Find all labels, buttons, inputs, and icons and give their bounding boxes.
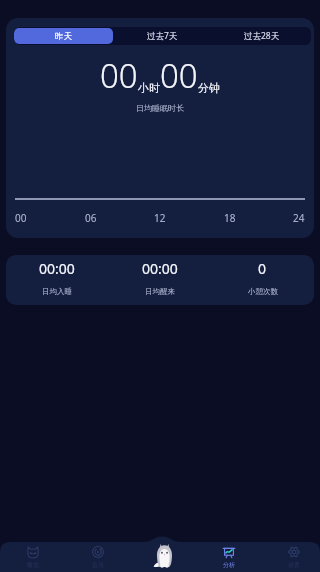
- staticText: 日均入睡: [42, 287, 72, 296]
- staticText: 分析: [223, 561, 235, 569]
- staticText: 过去7天: [147, 30, 178, 42]
- other: 分析: [223, 546, 235, 558]
- button[interactable]: 00:00: [6, 255, 108, 296]
- staticText: 18: [224, 211, 236, 225]
- other: 睡觉: [27, 546, 39, 558]
- staticText: 过去28天: [244, 30, 280, 42]
- staticText: 睡觉: [27, 561, 39, 569]
- staticText: 12: [154, 211, 166, 225]
- other: 音乐: [92, 546, 104, 558]
- staticText: 00:00: [39, 259, 75, 278]
- button[interactable]: 过去7天: [113, 28, 212, 44]
- other: 设置: [288, 546, 300, 558]
- button[interactable]: 设置: [274, 546, 314, 569]
- button[interactable]: 00:00: [108, 255, 211, 296]
- staticText: 24: [293, 211, 305, 225]
- button[interactable]: 睡觉: [13, 546, 53, 569]
- staticText: 日均醒来: [145, 287, 175, 296]
- button[interactable]: 过去28天: [212, 28, 311, 44]
- staticText: 0: [258, 259, 267, 278]
- staticText: 分钟: [198, 81, 220, 95]
- button[interactable]: 音乐: [78, 546, 118, 569]
- button[interactable]: 0: [211, 255, 314, 296]
- staticText: 昨天: [55, 31, 72, 42]
- staticText: 00: [160, 53, 198, 98]
- button[interactable]: 分析: [209, 546, 249, 569]
- staticText: 日均睡眠时长: [136, 103, 184, 113]
- staticText: 设置: [288, 561, 300, 569]
- staticText: 00: [100, 53, 138, 98]
- staticText: 00: [15, 211, 27, 225]
- staticText: 音乐: [92, 561, 104, 569]
- button[interactable]: 昨天: [14, 28, 113, 44]
- staticText: 小憩次数: [248, 287, 278, 296]
- staticText: 06: [85, 211, 97, 225]
- staticText: 00:00: [142, 259, 178, 278]
- staticText: 小时: [138, 81, 160, 95]
